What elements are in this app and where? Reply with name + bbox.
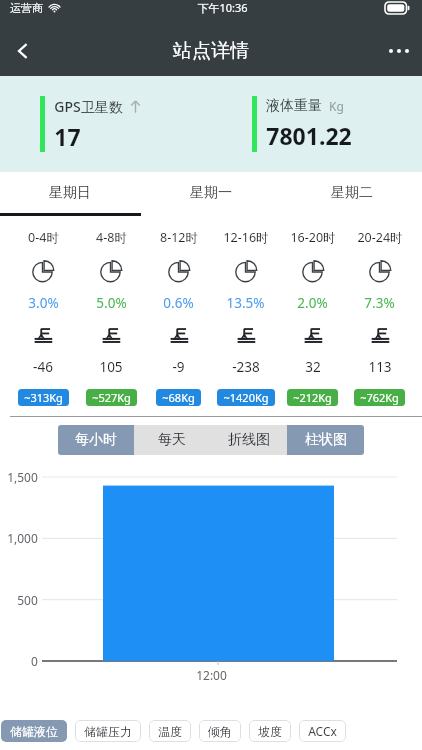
staticText: 13.5% <box>226 294 265 312</box>
staticText: 3.0% <box>28 294 59 312</box>
staticText: -238 <box>232 358 260 376</box>
staticText: ~212Kg <box>293 390 332 405</box>
staticText: 7801.22 <box>266 120 352 151</box>
staticText: 12-16时 <box>223 229 269 246</box>
staticText: 储罐压力 <box>84 724 132 739</box>
button[interactable]: 星期一 <box>140 172 281 213</box>
button[interactable]: 4-8时 <box>77 229 145 406</box>
staticText: Kg <box>329 98 344 114</box>
staticText: ~68Kg <box>162 390 195 405</box>
staticText: 113 <box>368 358 392 376</box>
button[interactable]: 12-16时 <box>212 229 279 406</box>
staticText: 温度 <box>158 724 182 739</box>
staticText: 8-12时 <box>160 229 198 246</box>
staticText: 0 <box>31 653 38 669</box>
button[interactable]: 折线图 <box>210 425 287 455</box>
staticText: 站点详情 <box>173 39 249 63</box>
staticText: GPS卫星数 <box>54 97 123 116</box>
button[interactable]: 柱状图 <box>287 425 364 455</box>
staticText: 0.6% <box>163 294 194 312</box>
button[interactable]: 每小时 <box>58 425 134 455</box>
staticText: 20-24时 <box>357 229 403 246</box>
staticText: 柱状图 <box>305 431 347 449</box>
staticText: 2.0% <box>297 294 328 312</box>
staticText: 105 <box>99 358 123 376</box>
staticText: 坡度 <box>258 724 282 739</box>
staticText: 储罐液位 <box>10 724 58 739</box>
button[interactable]: ACCx <box>299 720 346 742</box>
button[interactable]: 星期日 <box>0 172 140 213</box>
button[interactable]: 每天 <box>134 425 210 455</box>
button[interactable]: 8-12时 <box>145 229 212 406</box>
staticText: 液体重量 <box>266 97 322 115</box>
staticText: 4-8时 <box>96 229 127 246</box>
staticText: 1,500 <box>7 469 38 485</box>
staticText: 每小时 <box>75 431 117 449</box>
staticText: 星期二 <box>331 184 373 202</box>
staticText: 运营商 <box>10 1 43 15</box>
button[interactable]: 0-4时 <box>9 229 77 406</box>
button[interactable]: 温度 <box>149 720 191 742</box>
staticText: 500 <box>17 592 38 608</box>
staticText: 星期一 <box>190 184 232 202</box>
staticText: 倾角 <box>208 724 232 739</box>
staticText: 下午10:36 <box>197 0 248 15</box>
staticText: ~1420Kg <box>223 390 269 405</box>
staticText: 7.3% <box>364 294 395 312</box>
button[interactable]: More options <box>376 28 422 74</box>
button[interactable]: 储罐液位 <box>1 720 67 742</box>
staticText: 1,000 <box>7 530 38 546</box>
staticText: 折线图 <box>228 431 270 449</box>
staticText: -9 <box>172 358 185 376</box>
button[interactable]: Back <box>0 28 46 74</box>
staticText: 每天 <box>158 431 186 449</box>
button[interactable]: 星期二 <box>281 172 422 213</box>
staticText: 5.0% <box>96 294 127 312</box>
staticText: ~527Kg <box>92 390 131 405</box>
staticText: 16-20时 <box>290 229 336 246</box>
staticText: -46 <box>33 358 53 376</box>
button[interactable]: 坡度 <box>249 720 291 742</box>
staticText: 12:00 <box>196 667 227 683</box>
staticText: 17 <box>54 121 81 152</box>
button[interactable]: 20-24时 <box>346 229 413 406</box>
staticText: ACCx <box>308 723 337 739</box>
staticText: ~762Kg <box>360 390 399 405</box>
staticText: 星期日 <box>49 184 91 202</box>
button[interactable]: 储罐压力 <box>75 720 141 742</box>
staticText: 0-4时 <box>28 229 59 246</box>
button[interactable]: 倾角 <box>199 720 241 742</box>
staticText: ~313Kg <box>24 390 63 405</box>
button[interactable]: 16-20时 <box>279 229 346 406</box>
staticText: 32 <box>305 358 321 376</box>
